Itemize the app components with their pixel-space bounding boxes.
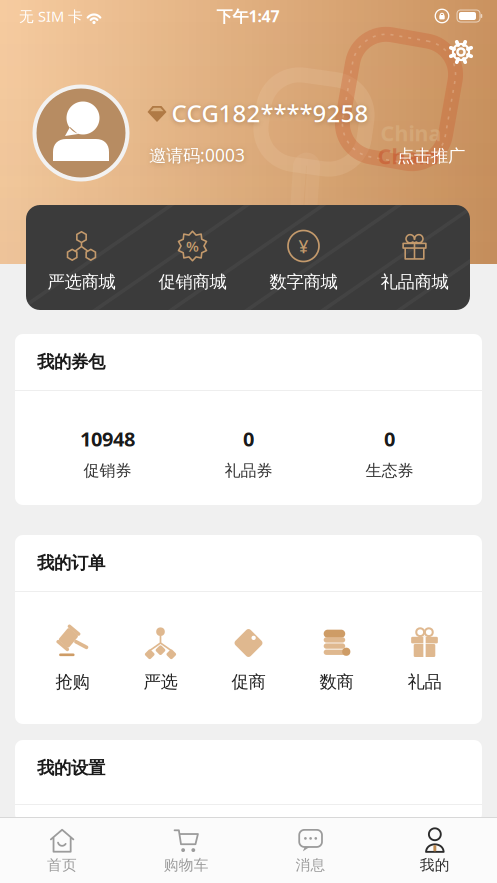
button[interactable]: 我的券包 — [15, 334, 482, 505]
button[interactable]: ¥ — [248, 205, 359, 310]
staticText: Chain — [377, 142, 438, 170]
staticText: 下午1:47 — [216, 5, 279, 27]
staticText: 严选 — [143, 671, 177, 693]
staticText: 促商 — [231, 671, 265, 693]
button[interactable]: 0 — [319, 413, 460, 493]
staticText: ¥ — [298, 235, 308, 258]
button[interactable]: 点击推广 — [397, 145, 465, 167]
button[interactable]: 购物车 — [124, 817, 248, 883]
button[interactable]: 头像 — [34, 86, 128, 180]
staticText: 邀请码:0003 — [149, 143, 245, 166]
button[interactable]: 我的 — [373, 817, 497, 883]
staticText: 0 — [384, 425, 395, 452]
staticText: 消息 — [296, 856, 326, 874]
staticText: % — [186, 236, 199, 256]
staticText: 我的设置 — [37, 757, 105, 779]
button[interactable]: 设置 — [441, 32, 481, 72]
staticText: 购物车 — [164, 856, 209, 874]
staticText: 点击推广 — [397, 145, 465, 167]
staticText: China — [380, 119, 441, 147]
staticText: 严选商城 — [47, 271, 115, 293]
staticText: 礼品商城 — [380, 271, 448, 293]
staticText: 礼品券 — [224, 461, 272, 481]
staticText: 首页 — [47, 856, 77, 874]
button[interactable]: 礼品 — [380, 610, 468, 710]
staticText: 抢购 — [55, 671, 89, 693]
button[interactable]: 首页 — [0, 817, 124, 883]
staticText: 生态券 — [365, 461, 413, 481]
staticText: 我的订单 — [37, 552, 105, 574]
button[interactable]: 严选商城 — [26, 205, 137, 310]
button[interactable]: 消息 — [248, 817, 373, 883]
staticText: 无 SIM 卡 — [19, 6, 83, 26]
button[interactable]: 促商 — [204, 610, 292, 710]
staticText: 我的券包 — [37, 351, 105, 373]
staticText: 数字商城 — [269, 271, 337, 293]
button[interactable]: % — [137, 205, 248, 310]
staticText: 促销商城 — [158, 271, 226, 293]
button[interactable]: 0 — [178, 413, 319, 493]
staticText: 我的 — [420, 856, 450, 874]
button[interactable]: 数商 — [292, 610, 380, 710]
button[interactable]: 严选 — [116, 610, 204, 710]
button[interactable]: 10948 — [37, 413, 178, 493]
button[interactable]: 抢购 — [28, 610, 116, 710]
button[interactable]: 我的设置 — [15, 740, 482, 822]
staticText: CCG182****9258 — [171, 97, 368, 129]
staticText: 促销券 — [83, 461, 131, 481]
staticText: 数商 — [319, 671, 353, 693]
staticText: 10948 — [80, 425, 135, 452]
button[interactable]: 礼品商城 — [359, 205, 470, 310]
staticText: 0 — [243, 425, 254, 452]
staticText: 礼品 — [407, 671, 441, 693]
